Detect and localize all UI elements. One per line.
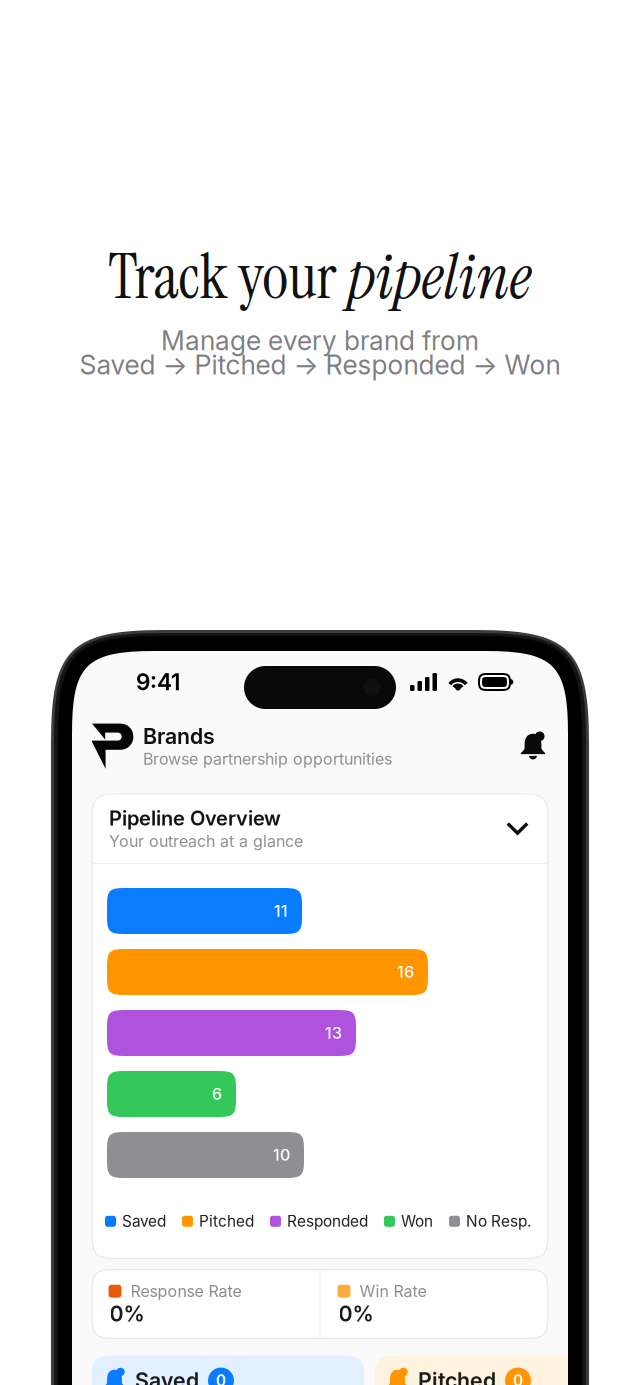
staticText: Pitched [199,1212,254,1231]
staticText: 0% [109,1301,144,1327]
staticText: Browse partnership opportunities [143,749,392,769]
staticText: 10 [273,1145,290,1165]
staticText: 0 [216,1371,226,1385]
staticText: Saved → Pitched → Responded → Won [79,349,560,381]
staticText: Responded [287,1212,368,1231]
staticText: 6 [212,1084,222,1104]
staticText: 9:41 [136,668,180,696]
staticText: 0 [513,1371,523,1385]
staticText: 16 [397,962,414,982]
staticText: Saved [135,1368,199,1385]
staticText: Saved [122,1212,166,1231]
button[interactable]: Brands [72,713,568,779]
staticText: Pitched [418,1368,496,1385]
staticText: Win Rate [359,1281,426,1301]
staticText: Brands [143,723,215,749]
button[interactable]: Pitched [375,1356,640,1385]
staticText: 11 [274,901,288,921]
button[interactable]: Saved [92,1356,364,1385]
button[interactable]: Pipeline Overview [92,794,548,863]
staticText: Manage every brand from [161,324,479,357]
staticText: Pipeline Overview [109,806,281,830]
staticText: 0% [338,1301,373,1327]
staticText: No Resp. [466,1212,531,1231]
staticText: Won [401,1212,433,1231]
staticText: Track your pipeline [108,237,531,316]
staticText: 13 [325,1023,342,1043]
staticText: Your outreach at a glance [109,831,303,851]
staticText: Response Rate [130,1281,241,1301]
